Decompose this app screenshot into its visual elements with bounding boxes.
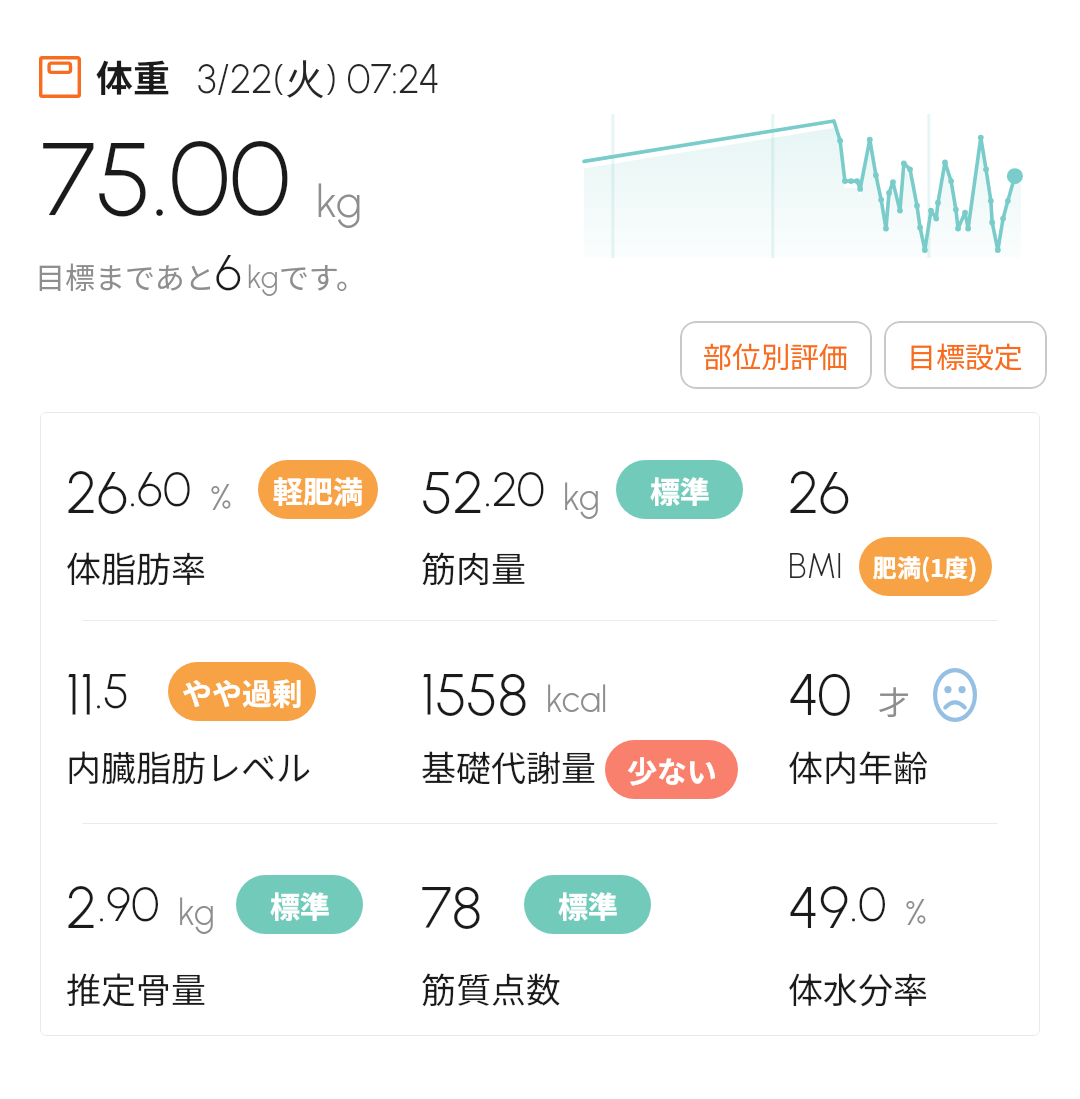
staticText: 49 xyxy=(788,873,850,933)
staticText: % xyxy=(210,476,232,519)
staticText: 体重 xyxy=(96,49,170,103)
staticText: 才 xyxy=(878,677,911,723)
staticText: .60 xyxy=(129,460,192,518)
staticText: 標準 xyxy=(650,468,710,511)
button[interactable]: 40 xyxy=(762,620,1040,823)
staticText: kg xyxy=(247,259,279,296)
staticText: 基礎代謝量 xyxy=(421,740,597,791)
button[interactable]: 目標設定 xyxy=(884,321,1047,389)
button[interactable]: 49 xyxy=(762,823,1040,1036)
staticText: .90 xyxy=(98,875,160,933)
staticText: kg xyxy=(563,476,600,519)
staticText: .0 xyxy=(850,875,887,933)
button[interactable]: 2 xyxy=(40,823,395,1036)
staticText: kg xyxy=(316,174,362,228)
staticText: 1558 xyxy=(421,660,528,720)
button[interactable]: 78 xyxy=(395,823,762,1036)
staticText: 標準 xyxy=(558,883,618,926)
staticText: 2 xyxy=(66,873,98,933)
staticText: 目標まであと xyxy=(35,254,215,297)
button[interactable]: 26 xyxy=(40,412,395,620)
staticText: .20 xyxy=(484,460,545,518)
staticText: 3/22(火) 07:24 xyxy=(197,54,440,104)
staticText: 少ない xyxy=(627,748,717,791)
staticText: 筋質点数 xyxy=(421,962,562,1013)
other: Weight scale xyxy=(39,56,81,98)
staticText: % xyxy=(905,891,927,934)
staticText: 78 xyxy=(421,873,482,933)
staticText: 目標設定 xyxy=(907,334,1024,376)
button[interactable]: 11 xyxy=(40,620,395,823)
staticText: 26 xyxy=(66,458,129,518)
staticText: 体水分率 xyxy=(788,962,929,1013)
staticText: kg xyxy=(178,891,215,934)
staticText: 52 xyxy=(421,458,484,518)
staticText: 75.00 xyxy=(41,117,291,241)
staticText: 推定骨量 xyxy=(66,962,207,1013)
staticText: BMI xyxy=(788,546,843,587)
staticText: 軽肥満 xyxy=(273,468,363,511)
staticText: 体脂肪率 xyxy=(66,541,207,592)
staticText: 体内年齢 xyxy=(788,740,929,791)
staticText: 部位別評価 xyxy=(703,334,849,376)
staticText: 肥満(1度) xyxy=(873,549,978,584)
button[interactable]: 26 xyxy=(762,412,1040,620)
staticText: .5 xyxy=(95,662,130,720)
staticText: 26 xyxy=(788,458,851,518)
staticText: 筋肉量 xyxy=(421,541,527,592)
button[interactable]: 1558 xyxy=(395,620,762,823)
staticText: 内臓脂肪レベル xyxy=(66,740,312,791)
staticText: 11 xyxy=(66,660,95,720)
staticText: やや過剰 xyxy=(182,670,302,713)
button[interactable]: 52 xyxy=(395,412,762,620)
staticText: 標準 xyxy=(270,883,330,926)
staticText: です。 xyxy=(279,254,366,297)
staticText: 6 xyxy=(215,242,242,302)
staticText: 40 xyxy=(788,660,852,720)
button[interactable]: 部位別評価 xyxy=(680,321,872,389)
staticText: kcal xyxy=(546,678,608,721)
